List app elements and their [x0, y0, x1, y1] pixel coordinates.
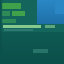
button[interactable]: Title — [2, 3, 25, 23]
button[interactable]: Open media panel — [37, 0, 64, 24]
